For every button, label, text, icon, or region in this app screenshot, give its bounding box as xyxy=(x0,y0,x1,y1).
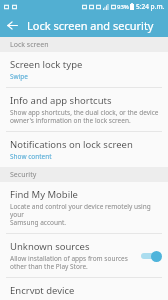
staticText: Find My Mobile xyxy=(10,188,78,201)
button[interactable]: Back xyxy=(0,13,24,37)
staticText: Unknown sources xyxy=(10,240,90,253)
button[interactable]: Encrypt device xyxy=(0,278,168,300)
staticText: Allow installation of apps from sources … xyxy=(10,254,128,271)
staticText: Encrypt device xyxy=(10,284,75,294)
button[interactable]: Info and app shortcuts xyxy=(0,88,168,131)
staticText: Show content xyxy=(10,152,52,161)
staticText: 93% xyxy=(117,3,129,11)
staticText: Locate and control your device remotely … xyxy=(10,202,162,227)
staticText: Notifications on lock screen xyxy=(10,138,133,151)
staticText: Info and app shortcuts xyxy=(10,94,112,107)
button[interactable]: Unknown sources xyxy=(0,234,168,277)
staticText: 5:24 p.m. xyxy=(136,2,165,11)
button[interactable]: Find My Mobile xyxy=(0,182,168,233)
staticText: Show app shortcuts, the dual clock, or t… xyxy=(10,108,159,125)
staticText: Security xyxy=(10,170,37,180)
staticText: Lock screen and security xyxy=(27,18,154,33)
staticText: Lock screen xyxy=(10,40,49,50)
staticText: Screen lock type xyxy=(10,58,83,71)
staticText: Swipe xyxy=(10,72,29,81)
button[interactable]: Screen lock type xyxy=(0,52,168,87)
button[interactable]: Unknown sources toggle xyxy=(140,249,162,263)
button[interactable]: Notifications on lock screen xyxy=(0,132,168,167)
